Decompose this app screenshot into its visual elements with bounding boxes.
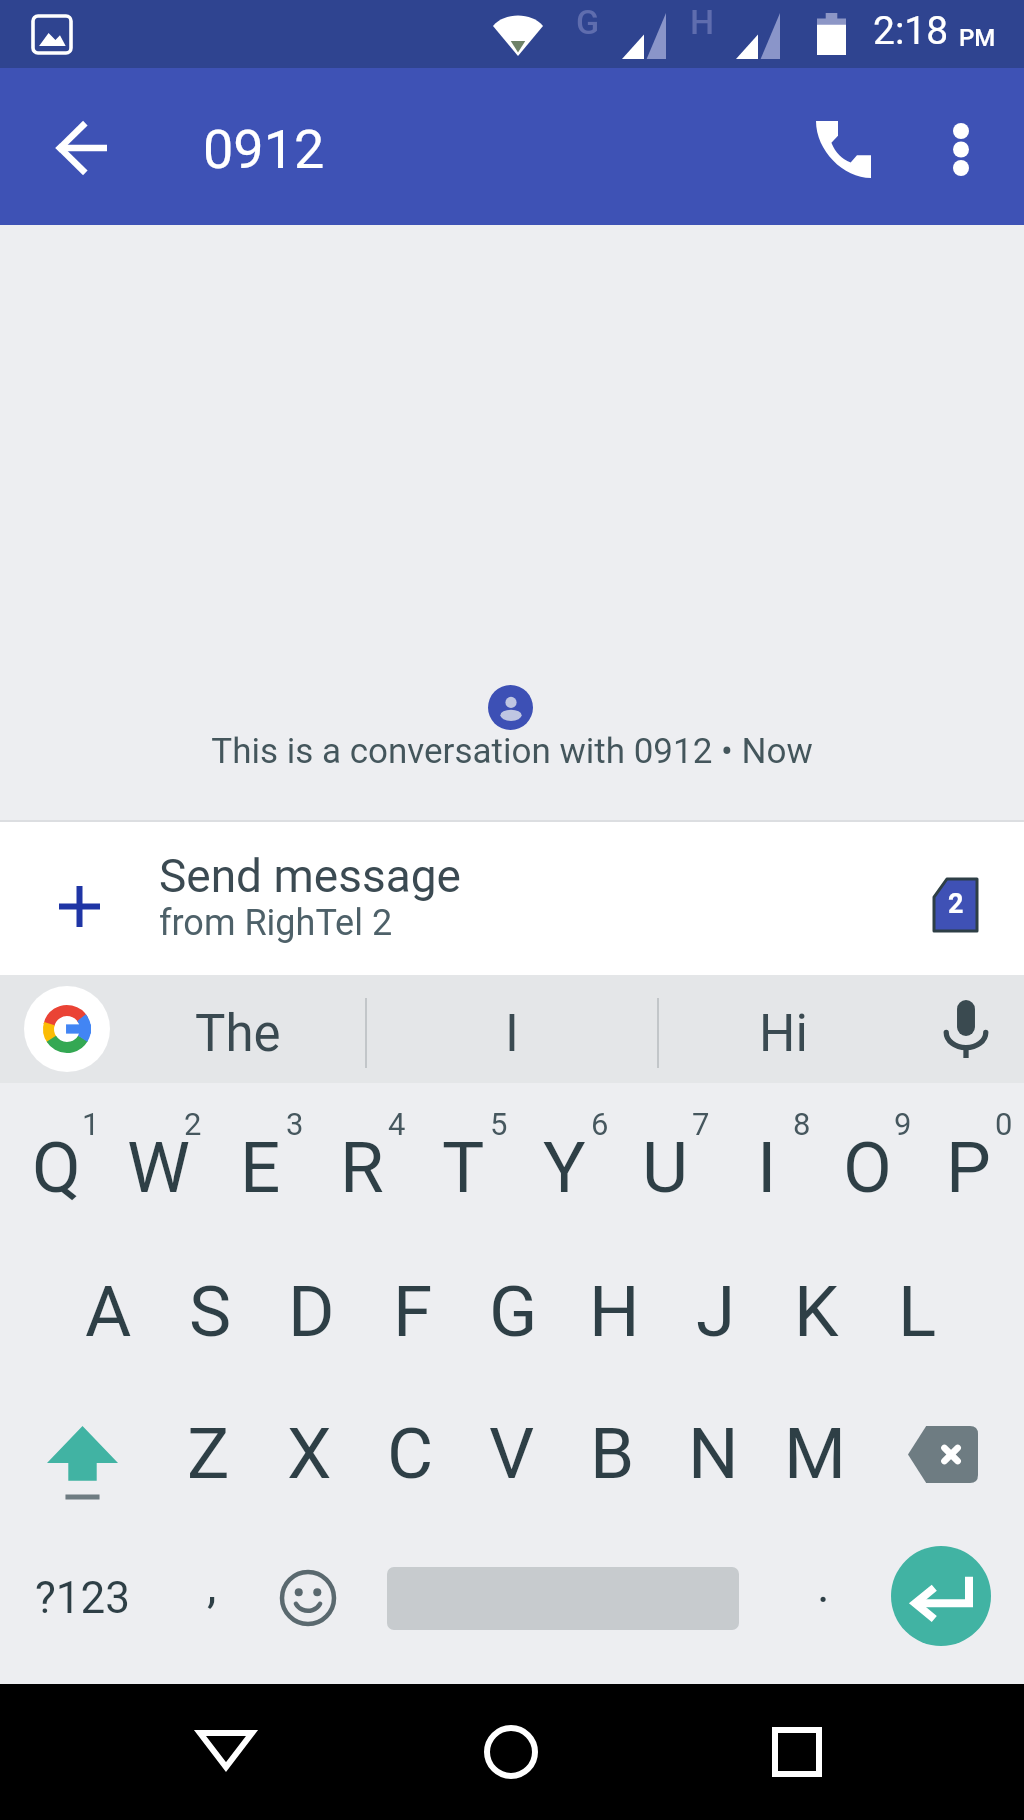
button[interactable]: W (107, 1095, 209, 1239)
staticText: 4 (388, 1106, 406, 1142)
button[interactable]: ?123 (0, 1526, 164, 1670)
button[interactable]: Home (436, 1684, 586, 1820)
button[interactable]: Space (356, 1526, 780, 1670)
staticText: 9 (894, 1106, 912, 1142)
staticText: I (757, 1126, 777, 1209)
staticText: B (590, 1412, 635, 1495)
button[interactable]: Y (514, 1095, 615, 1239)
staticText: P (946, 1126, 991, 1209)
staticText: C (387, 1412, 434, 1495)
button[interactable]: Google (24, 986, 110, 1072)
staticText: from RighTel 2 (159, 902, 393, 944)
staticText: Z (187, 1412, 230, 1495)
staticText: 7 (692, 1106, 710, 1142)
button[interactable]: K (766, 1239, 867, 1383)
staticText: A (85, 1270, 132, 1353)
staticText: . (817, 1557, 830, 1613)
button[interactable]: X (259, 1381, 360, 1525)
button[interactable]: B (562, 1381, 663, 1525)
staticText: G (576, 2, 600, 42)
button[interactable]: M (764, 1381, 865, 1525)
button[interactable]: O (817, 1095, 918, 1239)
button[interactable]: P (918, 1095, 1019, 1239)
button[interactable]: Q (5, 1095, 107, 1239)
staticText: ?123 (35, 1572, 130, 1624)
staticText: V (489, 1412, 535, 1495)
button[interactable]: D (261, 1239, 362, 1383)
button[interactable]: Z (158, 1381, 259, 1525)
button[interactable]: E (209, 1095, 311, 1239)
staticText: 5 (490, 1106, 508, 1142)
staticText: 0 (995, 1106, 1013, 1142)
button[interactable]: T (413, 1095, 514, 1239)
button[interactable]: C (360, 1381, 461, 1525)
button[interactable]: Voice input (924, 975, 1010, 1083)
button[interactable]: N (663, 1381, 764, 1525)
button[interactable]: Enter (866, 1526, 1024, 1670)
staticText: This is a conversation with 0912 • Now (0, 731, 1024, 772)
staticText: M (784, 1412, 846, 1495)
button[interactable]: A (57, 1239, 159, 1383)
button[interactable]: Delete (865, 1381, 1024, 1525)
button[interactable]: More options (918, 106, 1002, 190)
staticText: E (240, 1126, 281, 1209)
button[interactable]: I (716, 1095, 817, 1239)
staticText: S (189, 1270, 232, 1353)
staticText: PM (959, 24, 996, 52)
button[interactable]: F (362, 1239, 463, 1383)
staticText: G (489, 1270, 538, 1353)
staticText: 2:18 (873, 8, 949, 54)
staticText: 3 (286, 1106, 304, 1142)
button[interactable]: H (564, 1239, 665, 1383)
staticText: W (127, 1126, 190, 1209)
button[interactable]: J (665, 1239, 766, 1383)
staticText: O (843, 1126, 892, 1209)
staticText: L (898, 1270, 937, 1353)
staticText: Hi (759, 1004, 808, 1064)
staticText: X (287, 1412, 332, 1495)
button[interactable]: Recent apps (720, 1684, 870, 1820)
staticText: 2 (184, 1106, 202, 1142)
staticText: N (688, 1412, 739, 1495)
staticText: J (696, 1270, 736, 1353)
button[interactable]: Call (800, 106, 884, 190)
button[interactable]: The (120, 975, 355, 1083)
button[interactable]: . (780, 1526, 866, 1670)
staticText: D (288, 1270, 335, 1353)
staticText: R (340, 1126, 384, 1209)
staticText: K (794, 1270, 839, 1353)
staticText: 0912 (203, 118, 325, 181)
button[interactable]: R (311, 1095, 413, 1239)
staticText: The (195, 1004, 281, 1064)
button[interactable]: S (159, 1239, 261, 1383)
staticText: Q (32, 1126, 81, 1209)
button[interactable]: V (461, 1381, 562, 1525)
staticText: 8 (793, 1106, 811, 1142)
staticText: F (393, 1270, 433, 1353)
button[interactable]: U (615, 1095, 716, 1239)
staticText: H (589, 1270, 640, 1353)
staticText: 2 (948, 888, 964, 920)
staticText: Y (543, 1126, 586, 1209)
staticText: Send message (159, 849, 461, 903)
button[interactable]: G (463, 1239, 564, 1383)
button[interactable]: Send message (0, 820, 1024, 975)
button[interactable]: , (164, 1526, 260, 1670)
staticText: 6 (591, 1106, 609, 1142)
button[interactable]: Back (152, 1684, 302, 1820)
button[interactable]: L (867, 1239, 968, 1383)
button[interactable]: Shift (0, 1381, 158, 1525)
button[interactable]: I (367, 975, 657, 1083)
staticText: 1 (82, 1106, 100, 1142)
button[interactable]: Hi (651, 975, 916, 1083)
staticText: I (505, 1004, 519, 1064)
staticText: U (642, 1126, 689, 1209)
staticText: H (690, 2, 715, 42)
staticText: , (207, 1557, 217, 1613)
button[interactable]: Emoji (260, 1526, 356, 1670)
button[interactable]: Navigate up (38, 106, 122, 190)
staticText: T (442, 1126, 485, 1209)
